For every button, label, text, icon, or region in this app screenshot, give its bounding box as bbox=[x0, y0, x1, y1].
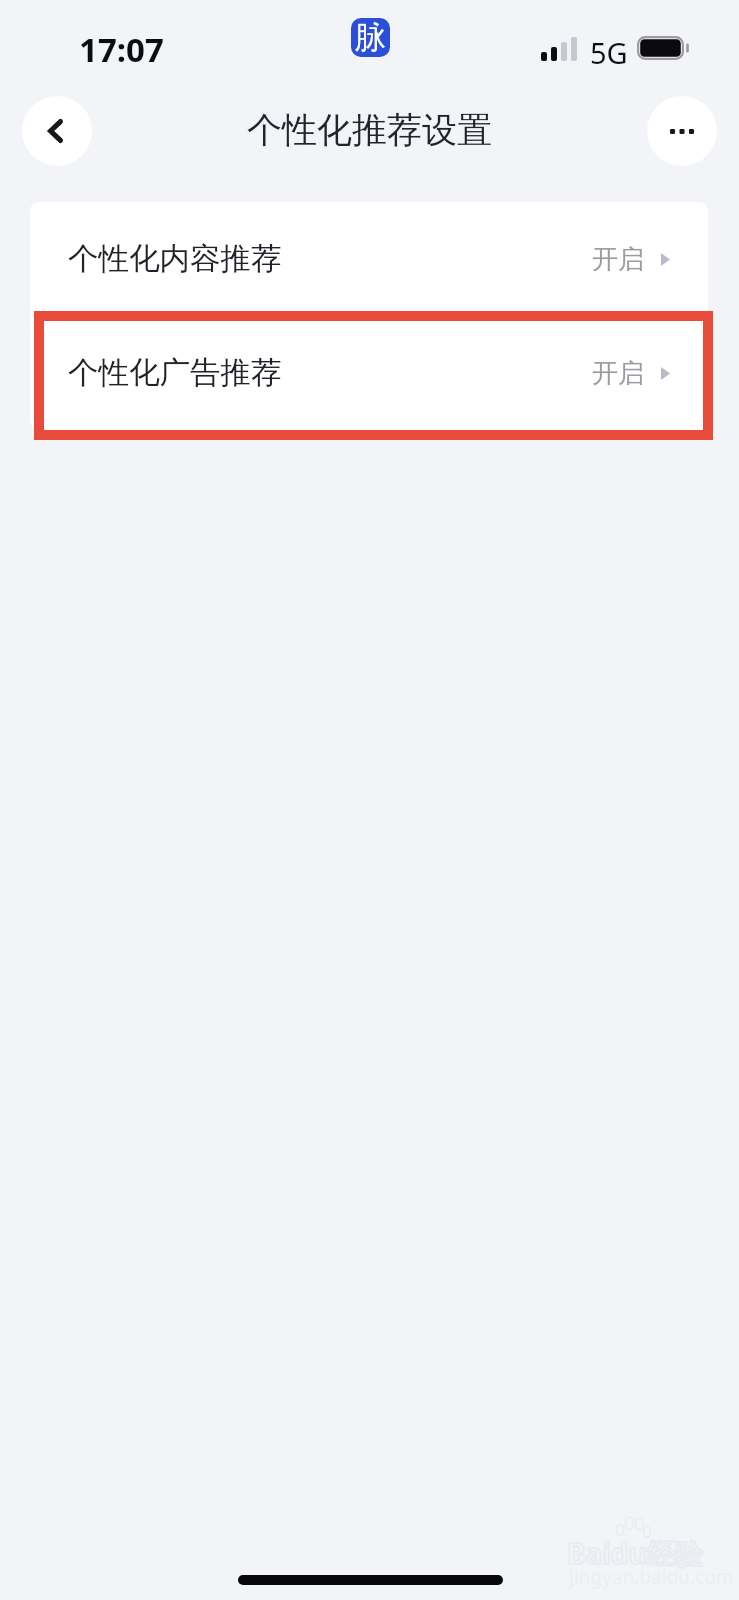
button[interactable]: 个性化广告推荐 bbox=[30, 316, 708, 430]
staticText: 开启 bbox=[592, 357, 644, 390]
staticText: 个性化内容推荐 bbox=[68, 240, 282, 278]
staticText: 5G bbox=[590, 33, 628, 72]
staticText: 开启 bbox=[592, 243, 644, 276]
button[interactable]: More options bbox=[647, 96, 717, 166]
staticText: Baidu经验 bbox=[567, 1534, 703, 1572]
staticText: 个性化推荐设置 bbox=[247, 108, 492, 152]
staticText: 17:07 bbox=[79, 27, 164, 72]
button[interactable]: 个性化内容推荐 bbox=[30, 202, 708, 316]
staticText: 个性化广告推荐 bbox=[68, 354, 282, 392]
button[interactable]: Back bbox=[22, 96, 92, 166]
staticText: 脉 bbox=[355, 18, 386, 57]
